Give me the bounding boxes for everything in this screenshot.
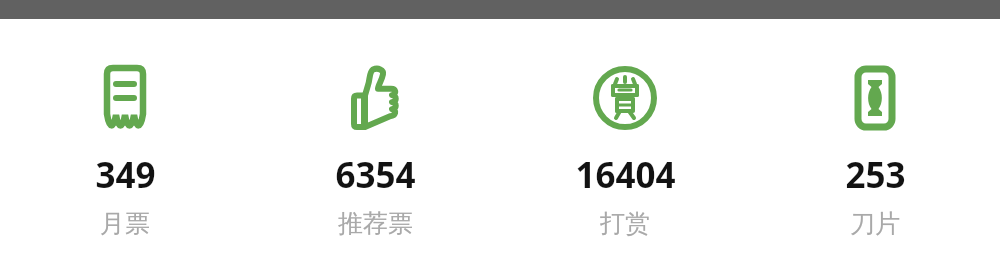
staticText: 6354 — [335, 151, 416, 199]
button[interactable]: 推荐票 — [250, 19, 500, 263]
staticText: 打赏 — [600, 208, 650, 239]
staticText: 349 — [95, 151, 156, 199]
button[interactable]: 打赏 — [500, 19, 750, 263]
button[interactable]: 月票 — [0, 19, 250, 263]
staticText: 16404 — [575, 151, 676, 199]
staticText: 刀片 — [850, 208, 900, 239]
staticText: 月票 — [100, 208, 150, 239]
staticText: 253 — [845, 151, 906, 199]
staticText: 推荐票 — [338, 208, 413, 239]
button[interactable]: 刀片 — [750, 19, 1000, 263]
